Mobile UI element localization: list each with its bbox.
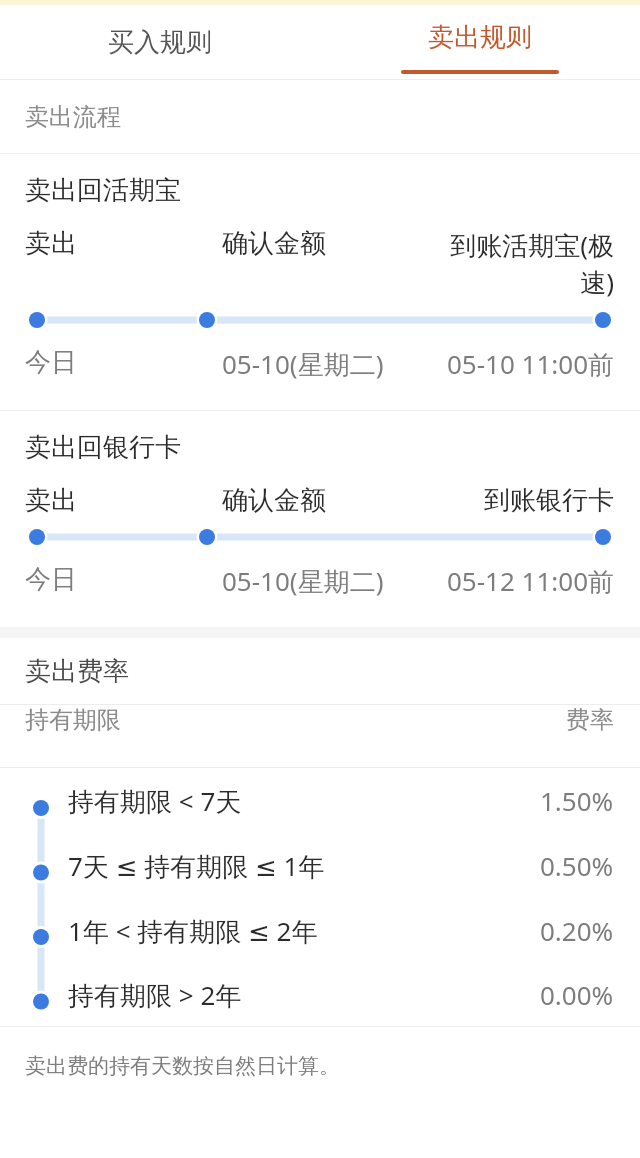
button[interactable]: 持有期限 < 7天 [0, 768, 640, 833]
staticText: 卖出 [25, 484, 77, 517]
staticText: 卖出费的持有天数按自然日计算。 [25, 1053, 340, 1079]
button[interactable]: 7天 ≤ 持有期限 ≤ 1年 [0, 833, 640, 898]
staticText: 7天 ≤ 持有期限 ≤ 1年 [68, 848, 325, 884]
button[interactable]: 买入规则 [0, 5, 320, 79]
staticText: 确认金额 [222, 484, 326, 517]
staticText: 买入规则 [108, 26, 212, 59]
staticText: 卖出回银行卡 [25, 431, 181, 464]
staticText: 今日 [25, 563, 77, 596]
staticText: 0.00% [540, 977, 614, 1012]
staticText: 卖出回活期宝 [25, 174, 181, 207]
staticText: 1年 < 持有期限 ≤ 2年 [68, 913, 318, 949]
staticText: 1.50% [540, 783, 614, 818]
staticText: 0.20% [540, 913, 614, 948]
staticText: 卖出 [25, 227, 77, 260]
staticText: 05-10(星期二) [222, 563, 384, 599]
button[interactable]: 持有期限 > 2年 [0, 963, 640, 1026]
staticText: 费率 [566, 705, 614, 735]
staticText: 确认金额 [222, 227, 326, 260]
staticText: 05-10(星期二) [222, 346, 384, 382]
staticText: 持有期限 [25, 705, 121, 735]
staticText: 今日 [25, 346, 77, 379]
staticText: 卖出流程 [25, 102, 121, 132]
staticText: 卖出费率 [25, 655, 129, 688]
staticText: 到账银行卡 [484, 484, 614, 517]
staticText: 0.50% [540, 848, 614, 883]
button[interactable]: 1年 < 持有期限 ≤ 2年 [0, 898, 640, 963]
button[interactable]: 卖出规则 [320, 5, 640, 79]
staticText: 卖出规则 [428, 21, 532, 54]
staticText: 持有期限 < 7天 [68, 783, 242, 819]
staticText: 到账活期宝(极速) [418, 227, 614, 300]
staticText: 持有期限 > 2年 [68, 977, 242, 1013]
staticText: 05-10 11:00前 [446, 346, 614, 382]
staticText: 05-12 11:00前 [446, 563, 614, 599]
